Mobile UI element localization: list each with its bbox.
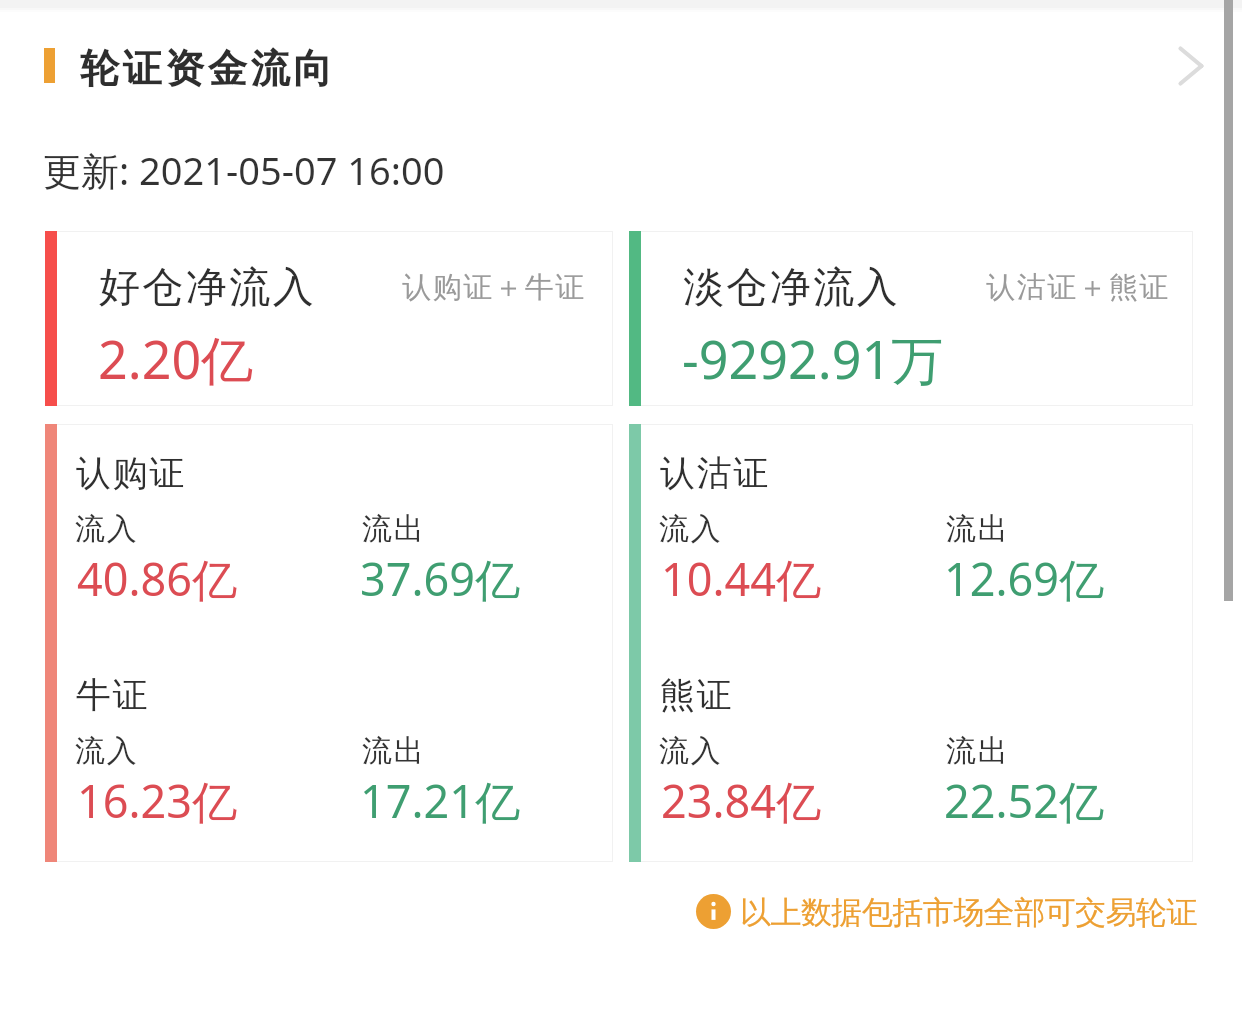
button[interactable]: 认购证	[45, 424, 613, 862]
button[interactable]: 以上数据包括市场全部可交易轮证	[696, 893, 1197, 929]
staticText: 流入	[75, 732, 139, 770]
staticText: 以上数据包括市场全部可交易轮证	[740, 893, 1197, 929]
staticText: 淡仓净流入	[682, 262, 899, 314]
staticText: 流出	[362, 510, 426, 548]
button[interactable]: 好仓净流入	[45, 231, 613, 406]
button[interactable]: 认沽证	[629, 424, 1193, 862]
button[interactable]: 轮证资金流向	[0, 20, 1242, 110]
staticText: 流出	[362, 732, 426, 770]
staticText: 流出	[946, 510, 1010, 548]
other: Open details	[1158, 44, 1214, 100]
staticText: 好仓净流入	[98, 262, 315, 314]
staticText: 认购证＋牛证	[402, 269, 587, 306]
staticText: 12.69亿	[944, 548, 1105, 609]
staticText: 牛证	[76, 673, 150, 717]
staticText: 22.52亿	[944, 770, 1105, 831]
staticText: 10.44亿	[661, 548, 822, 609]
staticText: 轮证资金流向	[80, 44, 336, 93]
staticText: 23.84亿	[661, 770, 822, 831]
staticText: 17.21亿	[360, 770, 521, 831]
staticText: 40.86亿	[77, 548, 238, 609]
staticText: 2.20亿	[98, 323, 254, 394]
staticText: -9292.91万	[682, 323, 944, 394]
staticText: 熊证	[660, 673, 734, 717]
staticText: 37.69亿	[360, 548, 521, 609]
staticText: 认购证	[76, 451, 187, 495]
staticText: 16.23亿	[77, 770, 238, 831]
staticText: 更新: 2021-05-07 16:00	[43, 144, 445, 196]
staticText: 流入	[659, 510, 723, 548]
staticText: 认沽证	[660, 451, 771, 495]
staticText: 流入	[75, 510, 139, 548]
staticText: 流入	[659, 732, 723, 770]
button[interactable]: 淡仓净流入	[629, 231, 1193, 406]
staticText: 流出	[946, 732, 1010, 770]
staticText: 认沽证＋熊证	[986, 269, 1171, 306]
